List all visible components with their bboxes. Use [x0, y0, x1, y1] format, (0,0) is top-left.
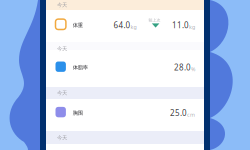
button[interactable]: 体脂率	[46, 51, 204, 82]
staticText: 11.0	[172, 20, 189, 30]
staticText: kg	[130, 23, 136, 30]
staticText: cm	[187, 111, 195, 118]
staticText: 今天	[57, 90, 67, 96]
button[interactable]: 体重	[46, 9, 204, 40]
staticText: 体脂率	[73, 64, 88, 71]
staticText: 64.0	[113, 20, 130, 30]
staticText: 28.0	[174, 62, 191, 73]
button[interactable]: 胸围	[46, 97, 204, 128]
staticText: %	[191, 66, 195, 73]
staticText: 今天	[57, 45, 67, 52]
staticText: 胸围	[73, 110, 83, 116]
staticText: 今天	[57, 2, 67, 8]
staticText: 今天	[57, 134, 67, 141]
staticText: kg	[189, 23, 195, 30]
staticText: 体重	[73, 22, 83, 28]
staticText: 较上次	[148, 18, 160, 23]
staticText: 25.0	[170, 108, 187, 118]
